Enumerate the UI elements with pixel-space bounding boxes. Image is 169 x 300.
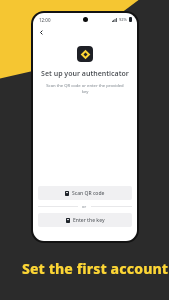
button[interactable]: Scan QR code [38, 186, 132, 200]
staticText: Enter the key [73, 217, 105, 224]
staticText: 12:00 [39, 17, 51, 23]
staticText: Set up your authenticator [33, 69, 137, 79]
staticText: or [82, 204, 87, 209]
staticText: Scan QR code [72, 190, 105, 197]
button[interactable]: Enter the key [38, 213, 132, 227]
staticText: Scan the QR code or enter the provided k… [43, 83, 127, 95]
staticText: Set the first account [22, 259, 169, 278]
button[interactable]: Back [37, 28, 46, 37]
staticText: 92% [119, 17, 127, 22]
